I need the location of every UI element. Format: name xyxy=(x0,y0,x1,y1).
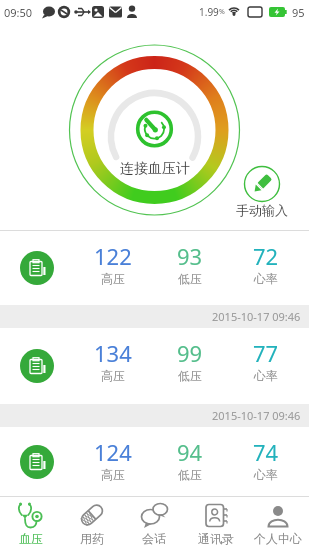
staticText: 1.99 xyxy=(199,5,219,19)
button[interactable]: 个人中心 xyxy=(247,497,309,549)
staticText: 99 xyxy=(177,338,203,368)
staticText: 77 xyxy=(253,338,279,368)
button[interactable]: 122 xyxy=(0,231,309,305)
button[interactable]: 会话 xyxy=(123,497,185,549)
staticText: 74 xyxy=(253,437,279,467)
staticText: 134 xyxy=(94,338,132,368)
staticText: 2015-10-17 09:46 xyxy=(212,408,301,423)
button[interactable]: 用药 xyxy=(61,497,123,549)
staticText: 72 xyxy=(253,241,279,271)
staticText: 低压 xyxy=(178,368,202,383)
staticText: 2015-10-17 09:46 xyxy=(212,309,301,324)
staticText: 心率 xyxy=(254,368,278,383)
staticText: 心率 xyxy=(254,467,278,482)
staticText: 心率 xyxy=(254,271,278,286)
staticText: 个人中心 xyxy=(254,531,302,546)
staticText: 低压 xyxy=(178,271,202,286)
button[interactable]: 手动输入 xyxy=(222,162,302,218)
staticText: 122 xyxy=(94,241,132,271)
staticText: 93 xyxy=(177,241,203,271)
staticText: 124 xyxy=(94,437,132,467)
staticText: 高压 xyxy=(101,467,125,482)
button[interactable]: 通讯录 xyxy=(185,497,247,549)
staticText: 血压 xyxy=(19,531,43,546)
staticText: % xyxy=(219,7,225,17)
button[interactable]: 134 xyxy=(0,328,309,404)
staticText: 低压 xyxy=(178,467,202,482)
staticText: 高压 xyxy=(101,368,125,383)
button[interactable] xyxy=(95,84,215,204)
staticText: 通讯录 xyxy=(198,531,234,546)
staticText: 09:50 xyxy=(4,5,33,20)
staticText: 高压 xyxy=(101,271,125,286)
staticText: 用药 xyxy=(80,531,104,546)
staticText: 会话 xyxy=(142,531,166,546)
staticText: 手动输入 xyxy=(236,202,288,218)
staticText: 95 xyxy=(292,5,305,20)
staticText: 连接血压计 xyxy=(120,160,190,178)
staticText: 94 xyxy=(177,437,203,467)
button[interactable]: 血压 xyxy=(0,497,61,549)
button[interactable]: 124 xyxy=(0,427,309,496)
